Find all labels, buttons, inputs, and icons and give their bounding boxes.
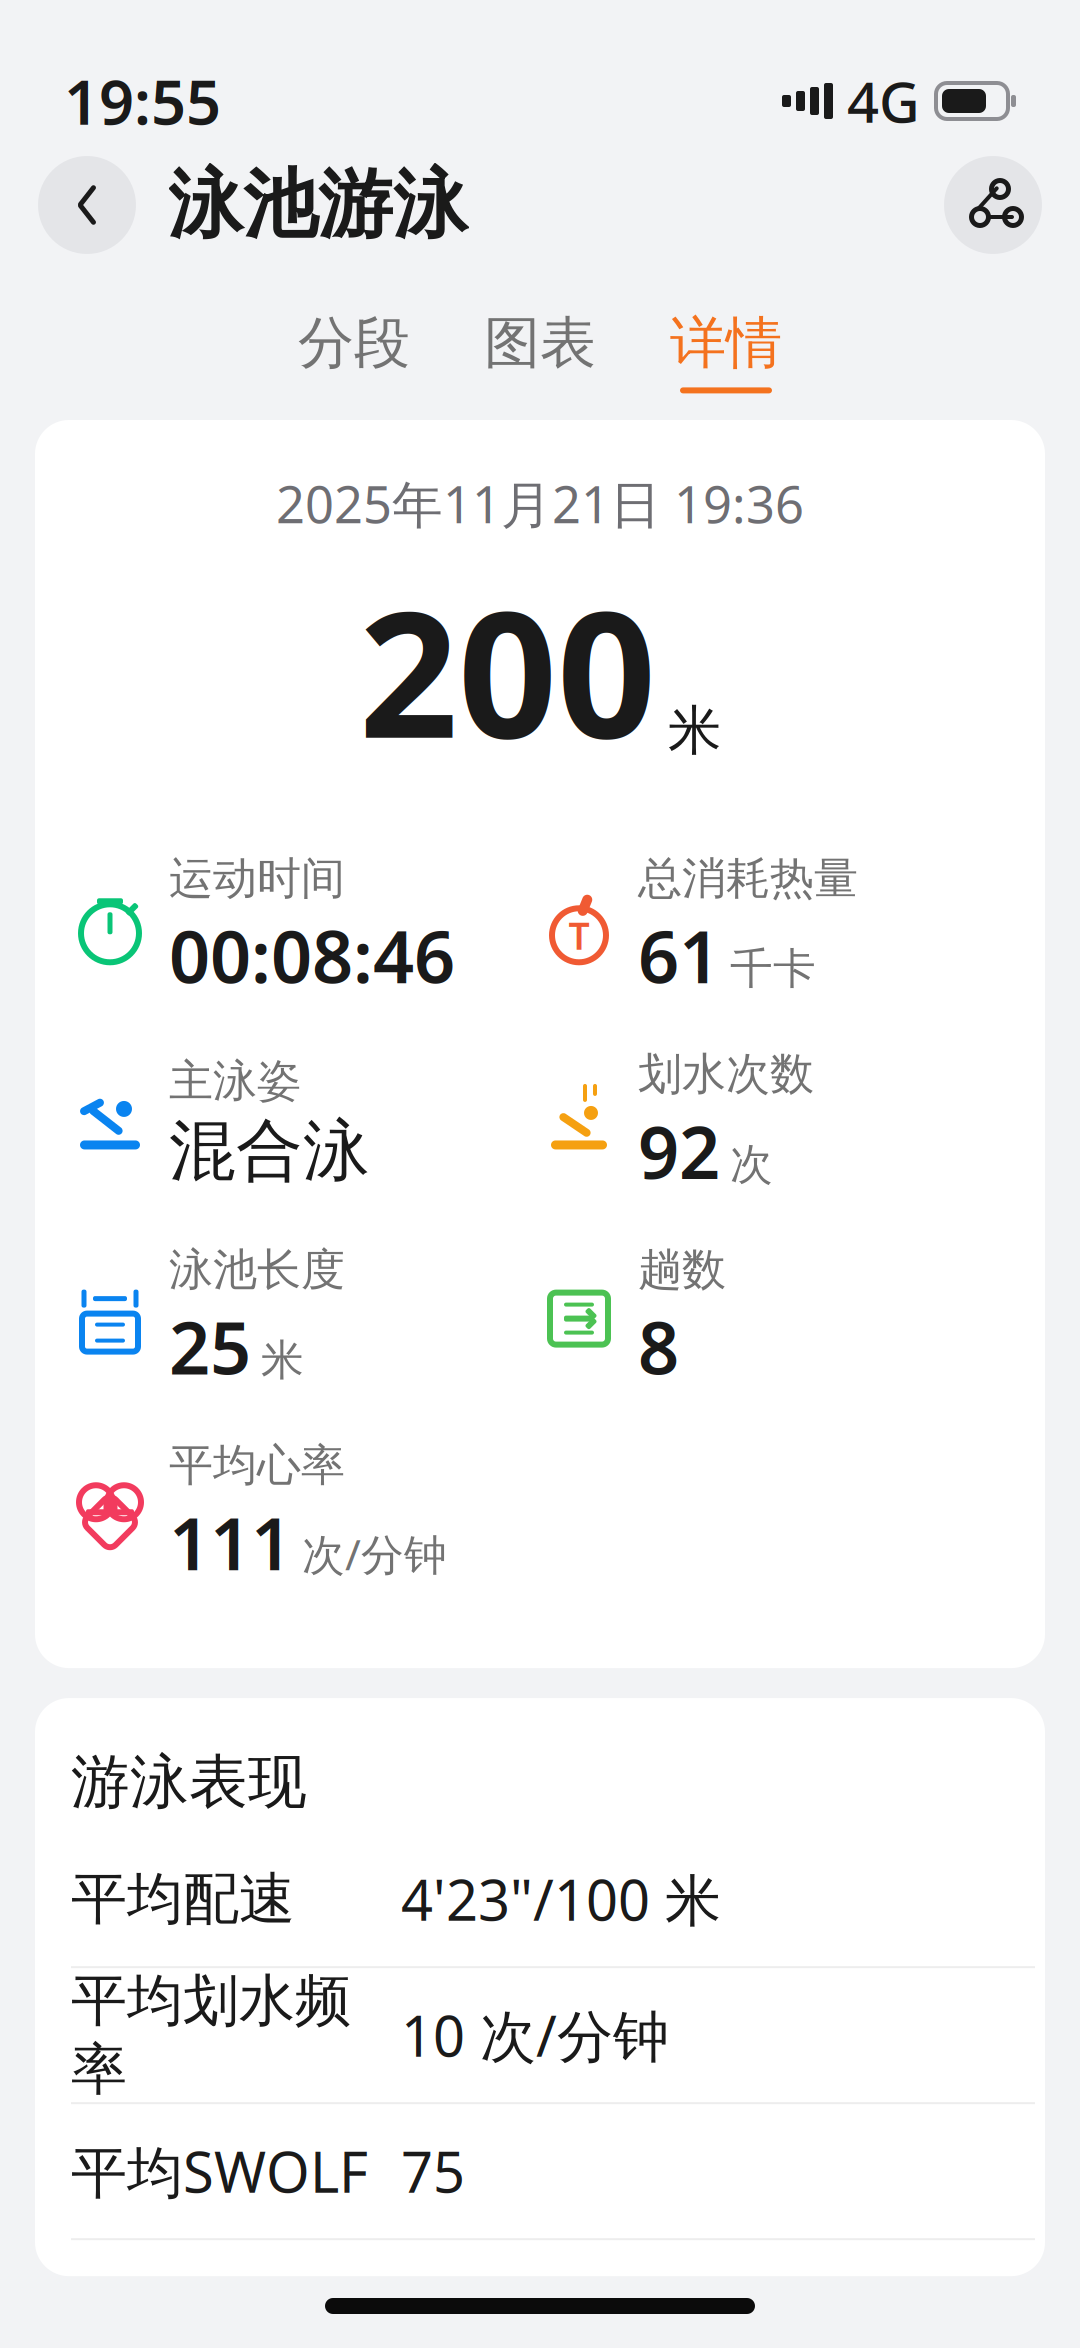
staticText: 19:55 [64,60,221,142]
staticText: 61 [638,907,720,1003]
staticText: 主泳姿 [169,1054,301,1108]
staticText: 分段 [298,309,410,377]
staticText: 运动时间 [169,851,345,905]
staticText: T [568,910,589,960]
staticText: 米 [261,1334,304,1386]
staticText: 25 [169,1299,251,1394]
staticText: 总消耗热量 [638,851,858,905]
staticText: 泳池长度 [169,1243,345,1297]
staticText: 00:08:46 [169,907,455,1003]
staticText: 200 [359,555,656,785]
staticText: 泳池游泳 [168,159,468,251]
staticText: 趟数 [638,1243,726,1297]
button[interactable]: 详情 [658,305,794,397]
staticText: 平均SWOLF [71,2134,368,2208]
staticText: 4'23"/100 米 [401,1862,721,1936]
staticText: 平均配速 [71,1865,295,1934]
staticText: 75 [401,2134,465,2208]
staticText: 次/分钟 [302,1525,447,1582]
staticText: 2025年11月21日 19:36 [276,470,804,537]
staticText: 千卡 [730,943,816,995]
staticText: 8 [638,1299,679,1394]
button[interactable]: 分享 [944,156,1042,254]
staticText: 10 次/分钟 [401,1998,669,2072]
staticText: 划水次数 [638,1047,814,1101]
staticText: 详情 [670,309,782,377]
staticText: 平均心率 [169,1438,345,1492]
staticText: 92 [638,1103,720,1199]
staticText: 4G [847,64,920,138]
staticText: 游泳表现 [71,1746,307,1818]
staticText: 111 [169,1494,292,1590]
staticText: 图表 [484,309,596,377]
button[interactable]: 返回 [38,156,136,254]
staticText: 米 [668,698,721,763]
button[interactable]: 图表 [472,305,608,397]
button[interactable]: 分段 [286,305,422,397]
staticText: 混合泳 [169,1110,370,1192]
staticText: 平均划水频率 [71,1966,351,2104]
staticText: 次 [730,1138,773,1191]
